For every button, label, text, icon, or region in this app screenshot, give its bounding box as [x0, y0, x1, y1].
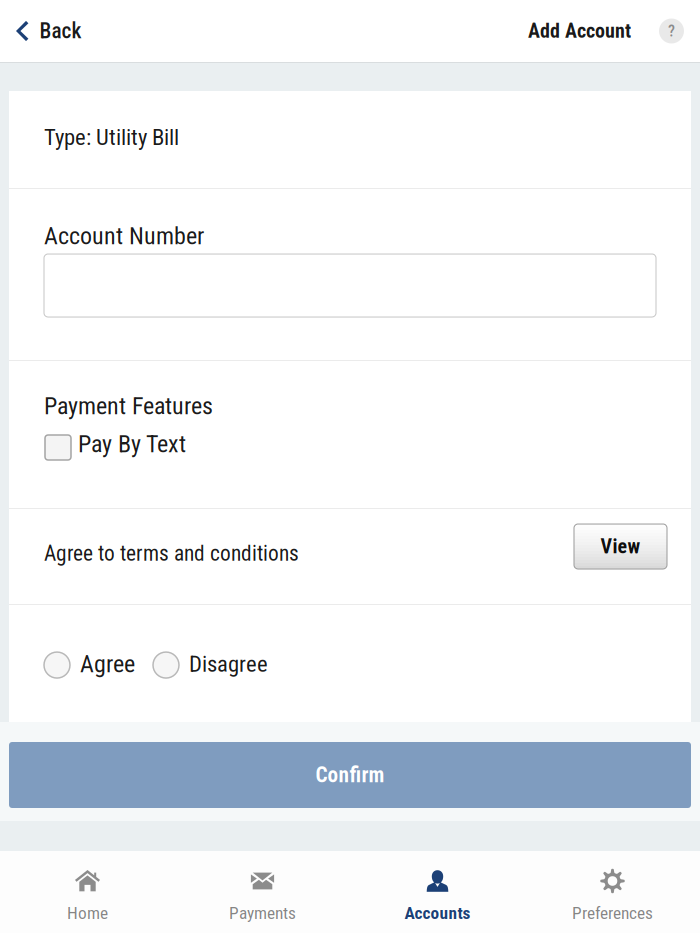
staticText: Add Account [528, 19, 631, 43]
staticText: Agree [80, 650, 135, 678]
staticText: Accounts [404, 903, 470, 923]
button[interactable]: Help [631, 18, 700, 43]
staticText: ? [668, 22, 675, 40]
staticText: View [600, 535, 640, 558]
staticText: Confirm [315, 762, 384, 787]
button[interactable]: View [574, 524, 667, 569]
button[interactable]: Preferences [525, 870, 700, 923]
staticText: Account Number [44, 222, 204, 250]
staticText: Back [39, 18, 81, 43]
button[interactable]: Add Account [528, 3, 631, 59]
button[interactable]: Pay By Text [9, 361, 691, 460]
button[interactable]: Back [0, 2, 81, 59]
button[interactable]: Payments [175, 870, 350, 923]
staticText: Pay By Text [78, 430, 186, 458]
button[interactable]: Accounts [350, 870, 525, 923]
staticText: Disagree [189, 651, 268, 677]
staticText: Payment Features [44, 392, 213, 420]
staticText: Home [67, 903, 108, 923]
button[interactable]: Home [0, 870, 175, 923]
button[interactable]: Agree [44, 650, 135, 680]
staticText: Payments [229, 903, 296, 923]
button[interactable]: Confirm [9, 742, 691, 808]
staticText: Preferences [572, 903, 653, 923]
staticText: Agree to terms and conditions [44, 541, 299, 566]
staticText: Type: Utility Bill [44, 124, 179, 151]
button[interactable]: Disagree [153, 651, 268, 679]
